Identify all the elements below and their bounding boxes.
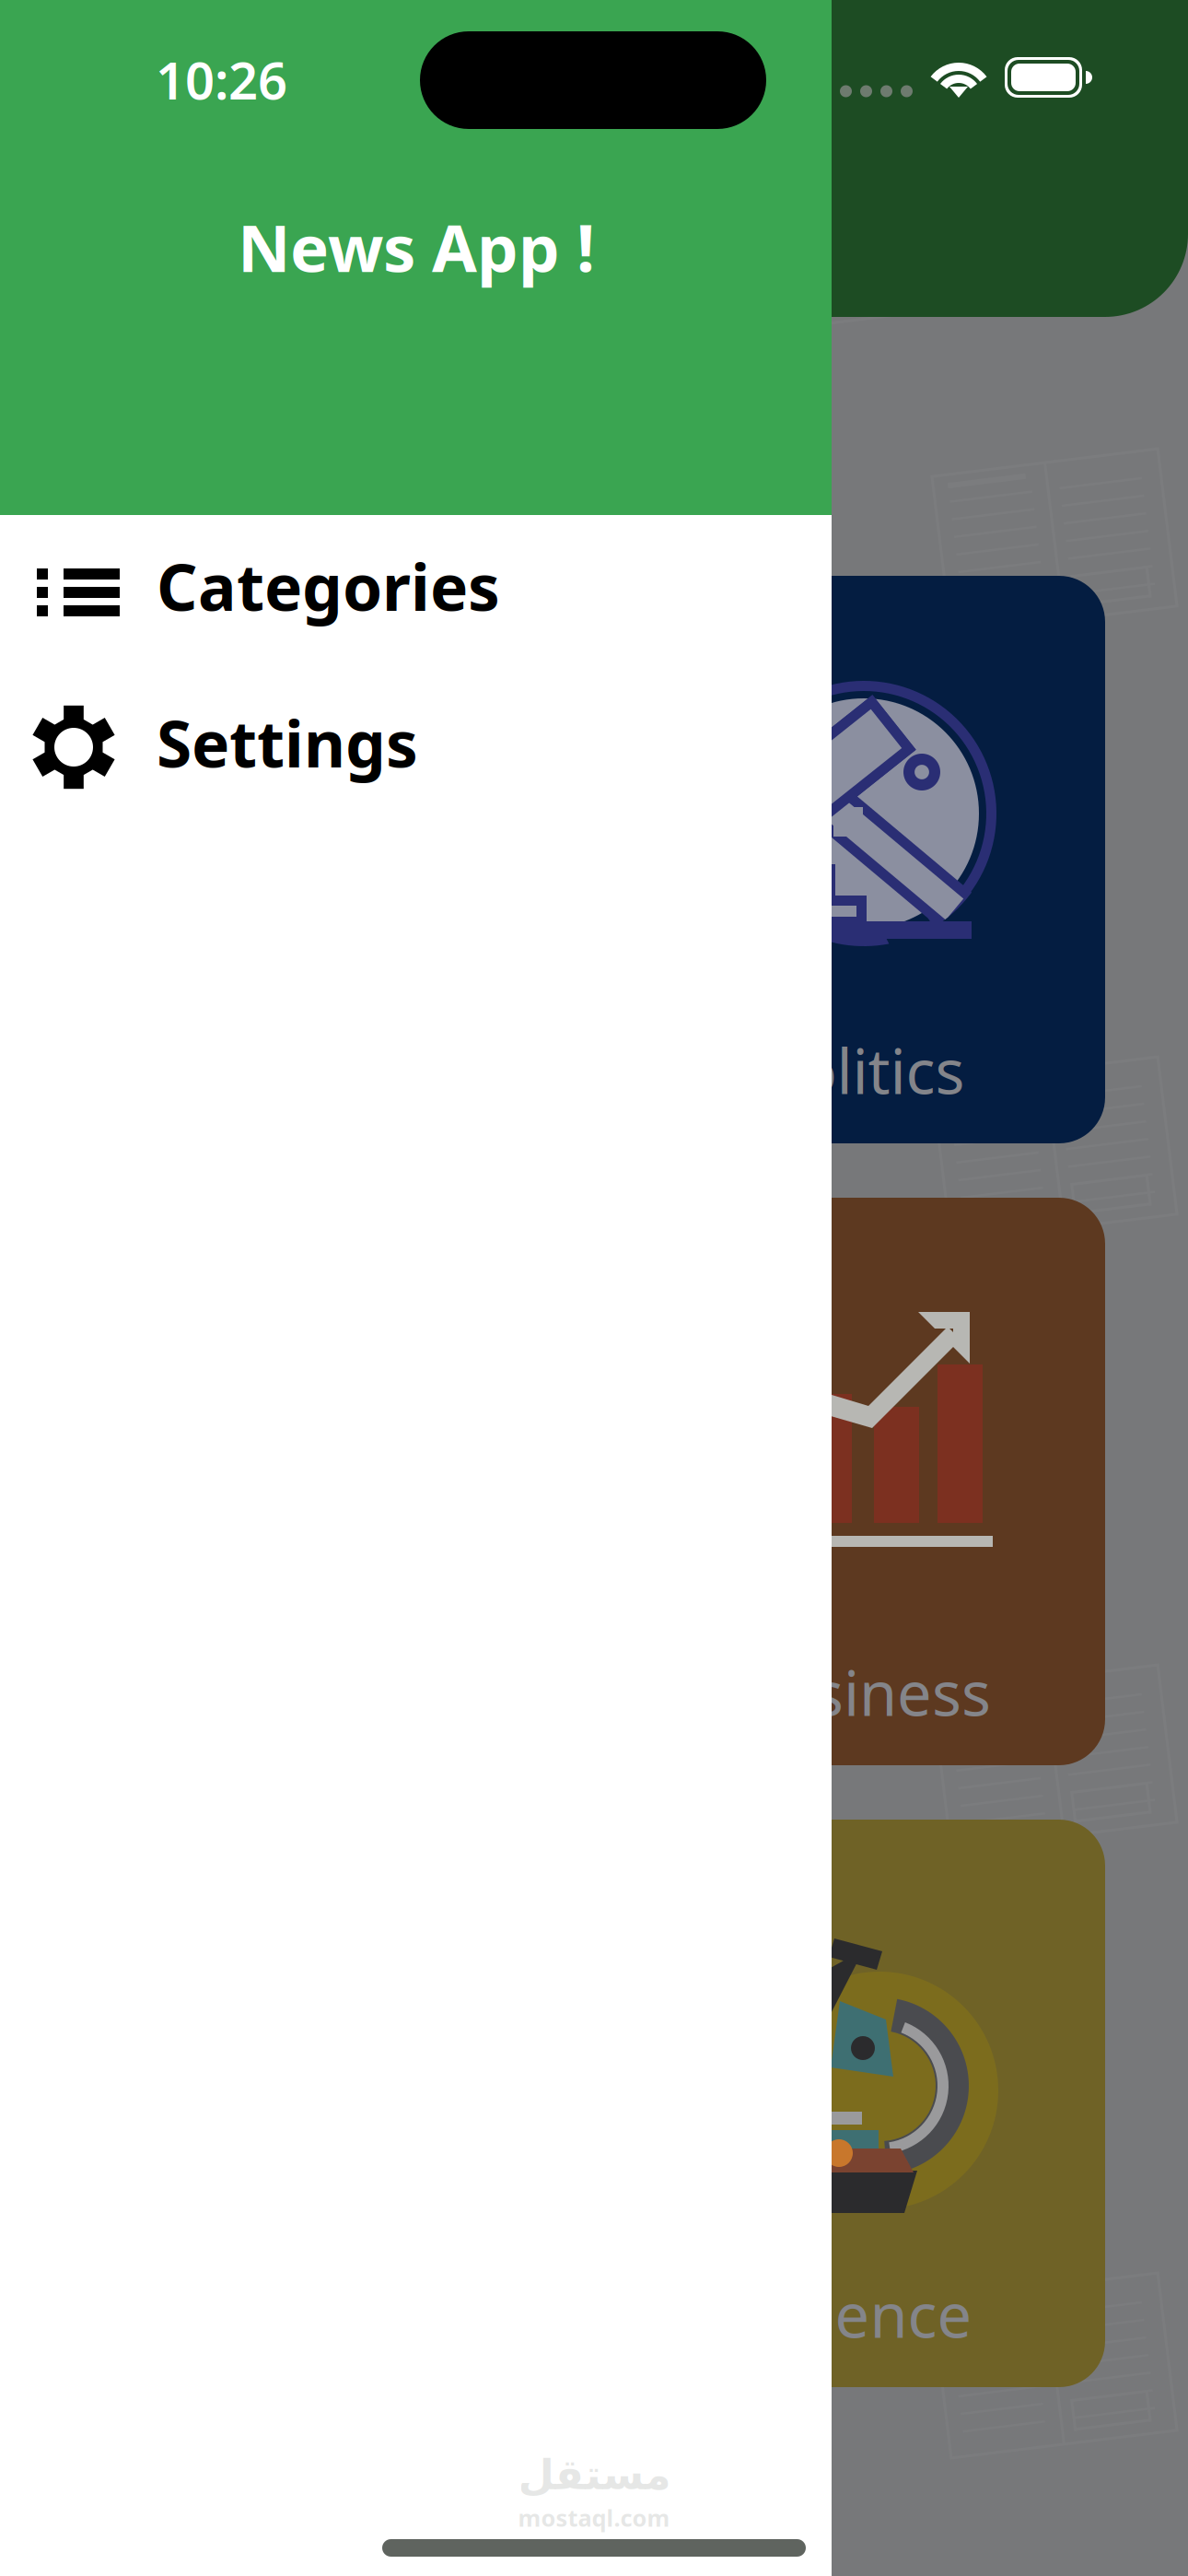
button[interactable]: Settings bbox=[0, 673, 832, 812]
staticText: Science bbox=[756, 2273, 972, 2355]
button[interactable]: Politics bbox=[623, 576, 1105, 1143]
staticText: Politics bbox=[763, 1030, 965, 1111]
staticText: Settings bbox=[157, 700, 418, 785]
button[interactable]: Sports bbox=[83, 576, 565, 1143]
staticText: mostaql.com bbox=[518, 2502, 670, 2533]
button[interactable]: Close menu bbox=[0, 0, 1188, 2576]
staticText: Categories bbox=[157, 544, 500, 628]
staticText: News App ! bbox=[238, 204, 595, 290]
button[interactable]: Categories bbox=[0, 517, 832, 655]
staticText: Business bbox=[737, 1651, 991, 1733]
staticText: مستقل bbox=[518, 2451, 670, 2499]
staticText: 10:26 bbox=[156, 45, 287, 114]
button[interactable]: Science bbox=[623, 1820, 1105, 2387]
button[interactable]: Business bbox=[623, 1198, 1105, 1765]
